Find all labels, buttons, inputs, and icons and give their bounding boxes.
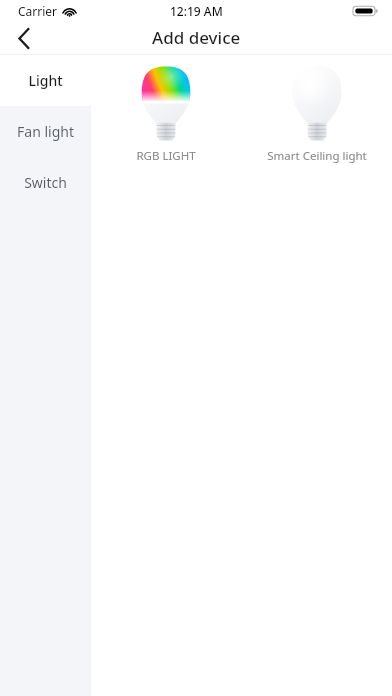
button[interactable]: Fan light: [0, 106, 91, 157]
staticText: Smart Ceiling light: [267, 148, 367, 164]
button[interactable]: Light: [0, 55, 91, 106]
button[interactable]: Smart Ceiling light: [241, 60, 392, 168]
staticText: 12:19 AM: [170, 3, 223, 19]
button[interactable]: Switch: [0, 157, 91, 208]
button[interactable]: Back: [0, 22, 48, 54]
staticText: Fan light: [17, 122, 74, 141]
staticText: Light: [28, 71, 63, 90]
staticText: Carrier: [18, 3, 58, 19]
button[interactable]: RGB LIGHT: [91, 60, 241, 168]
staticText: Add device: [152, 26, 241, 49]
staticText: RGB LIGHT: [136, 148, 196, 164]
staticText: Switch: [24, 173, 67, 192]
